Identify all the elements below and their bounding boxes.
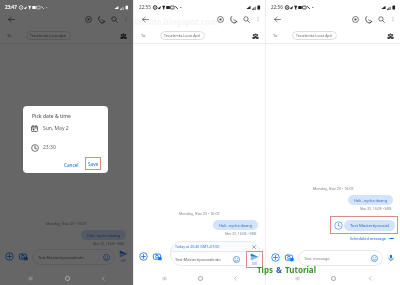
staticText: Tesselamka Lucas Apel — [30, 33, 67, 38]
button[interactable]: Test Mastertipsosialindo — [32, 249, 115, 265]
staticText: 23:30 — [43, 144, 56, 151]
staticText: Hali...nycha doang — [87, 233, 120, 238]
button[interactable]: Tesselamka Lucas Apel — [26, 31, 71, 40]
button[interactable]: More options — [252, 13, 263, 24]
button[interactable]: Camera — [152, 251, 163, 262]
button[interactable]: Video call — [214, 13, 226, 25]
staticText: Monday, Nov 23 • 16:07 — [179, 211, 220, 216]
button[interactable]: More options — [387, 13, 398, 24]
button[interactable]: Scheduled — [333, 220, 344, 231]
staticText: Sun, May 2 — [43, 125, 69, 132]
staticText: 22:55 — [139, 4, 151, 10]
button[interactable]: Home — [194, 272, 206, 284]
button[interactable]: Video call — [82, 13, 94, 25]
button[interactable]: Home — [327, 272, 339, 284]
button[interactable]: Send SMS — [246, 251, 263, 268]
staticText: To — [273, 33, 278, 38]
button[interactable]: Camera — [284, 252, 295, 263]
staticText: SMS — [252, 262, 258, 266]
button[interactable]: Recents — [24, 272, 36, 284]
staticText: Cancel — [64, 162, 79, 168]
button[interactable]: Back — [5, 13, 17, 25]
button[interactable]: Add — [4, 251, 15, 262]
button[interactable]: Search — [375, 13, 387, 25]
staticText: Monday, Nov 23 • 16:07 — [313, 186, 354, 191]
button[interactable]: Search — [108, 13, 120, 25]
button[interactable]: Tesselamka Lucas Apel — [292, 31, 337, 40]
button[interactable]: Back — [271, 13, 283, 25]
staticText: SMS — [121, 259, 127, 263]
staticText: Nov 23, 16:08 • SMS — [93, 241, 125, 246]
button[interactable]: Add — [270, 252, 281, 263]
staticText: Nov 23, 16:08 • SMS — [225, 231, 257, 236]
staticText: Test Mastertipsosialindo — [175, 257, 221, 262]
button[interactable]: Home — [61, 272, 73, 284]
button[interactable]: Call — [362, 13, 374, 25]
staticText: Monday, Nov 23 • 16:07 — [46, 221, 87, 226]
staticText: Text message — [304, 256, 330, 261]
button[interactable]: Text message — [298, 250, 383, 266]
button[interactable]: Back — [364, 272, 376, 284]
button[interactable]: Recents — [158, 272, 170, 284]
button[interactable]: Test Mastertipsosialindo — [344, 220, 395, 231]
staticText: Today at 20:40 GMT+07:00 — [175, 244, 220, 249]
staticText: Nov 23, 16:08 • SMS — [360, 206, 392, 211]
button[interactable]: Search — [240, 13, 252, 25]
button[interactable]: Contacts — [250, 31, 260, 41]
button[interactable]: Contacts — [385, 31, 395, 41]
button[interactable]: Hali...nycha doang — [81, 230, 126, 240]
button[interactable]: Camera — [18, 251, 29, 262]
staticText: Tips — [257, 264, 276, 275]
staticText: Save — [88, 161, 99, 167]
staticText: 23:47 — [5, 4, 17, 10]
staticText: Test Mastertipsosialindo — [350, 223, 389, 229]
staticText: & — [276, 264, 285, 275]
staticText: To — [141, 33, 146, 38]
staticText: To — [7, 33, 12, 38]
button[interactable]: Tesselamka Lucas Apel — [160, 31, 205, 40]
button[interactable]: Back — [97, 272, 109, 284]
staticText: Tesselamka Lucas Apel — [164, 33, 201, 38]
button[interactable]: Contacts — [118, 31, 128, 41]
button[interactable]: 23:30 — [31, 143, 56, 152]
staticText: Tutorial — [285, 264, 317, 275]
staticText: Hali...nycha doang — [219, 223, 252, 228]
button[interactable]: Cancel schedule — [250, 243, 257, 250]
button[interactable]: Voice input — [385, 252, 397, 264]
staticText: mastertipsosialindo.blogspot.com — [82, 16, 219, 27]
button[interactable]: Cancel — [64, 159, 79, 170]
staticText: Scheduled message — [350, 236, 386, 241]
button[interactable]: Call — [95, 13, 107, 25]
button[interactable]: Send SMS — [117, 250, 130, 263]
button[interactable]: Add — [138, 251, 149, 262]
staticText: Hali...nycha doang — [354, 198, 387, 203]
button[interactable]: Recents — [291, 272, 303, 284]
staticText: Tesselamka Lucas Apel — [296, 33, 333, 38]
staticText: Pick date & time — [32, 113, 71, 120]
button[interactable]: Video call — [349, 13, 361, 25]
button[interactable]: Call — [227, 13, 239, 25]
button[interactable]: Hali...nycha doang — [213, 220, 258, 230]
staticText: 23:47 — [5, 4, 17, 10]
staticText: Test Mastertipsosialindo — [38, 255, 84, 260]
staticText: 22:56 — [271, 4, 283, 10]
button[interactable]: Sun, May 2 — [31, 124, 69, 133]
button[interactable]: Back — [139, 13, 151, 25]
button[interactable]: Save — [85, 157, 101, 170]
button[interactable]: Back — [229, 272, 241, 284]
button[interactable]: Hali...nycha doang — [348, 195, 393, 205]
button[interactable]: Scheduled message — [266, 236, 394, 241]
